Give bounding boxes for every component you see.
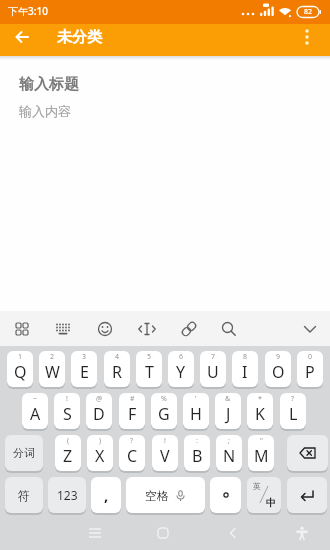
staticText: 5 bbox=[147, 352, 152, 362]
button[interactable] bbox=[215, 315, 243, 343]
staticText: T bbox=[145, 361, 154, 383]
staticText: G bbox=[158, 403, 170, 425]
staticText: 82 bbox=[304, 7, 313, 17]
staticText: S bbox=[63, 403, 72, 425]
staticText: 1 bbox=[18, 352, 23, 362]
button[interactable]: 6 bbox=[168, 351, 194, 387]
staticText: P bbox=[305, 361, 315, 383]
button[interactable]: 分词 bbox=[5, 435, 43, 471]
staticText: J bbox=[226, 403, 231, 425]
button[interactable]: 9 bbox=[265, 351, 291, 387]
button[interactable]: 3 bbox=[71, 351, 97, 387]
staticText: ? bbox=[291, 394, 295, 404]
button[interactable] bbox=[148, 518, 177, 547]
button[interactable] bbox=[91, 315, 119, 343]
button[interactable]: ? bbox=[119, 435, 145, 471]
staticText: 6 bbox=[179, 352, 184, 362]
button[interactable] bbox=[175, 315, 203, 343]
button[interactable] bbox=[133, 315, 161, 343]
button[interactable]: 空格 bbox=[126, 477, 205, 513]
button[interactable]: @ bbox=[86, 393, 112, 429]
button[interactable]: 符 bbox=[5, 477, 43, 513]
staticText: ! bbox=[66, 394, 68, 404]
button[interactable]: & bbox=[215, 393, 241, 429]
button[interactable]: : bbox=[184, 435, 210, 471]
staticText: ? bbox=[130, 436, 134, 446]
staticText: " bbox=[260, 436, 263, 446]
button[interactable]: ( bbox=[55, 435, 81, 471]
staticText: 8 bbox=[243, 352, 248, 362]
staticText: 123 bbox=[57, 487, 78, 503]
button[interactable] bbox=[210, 477, 241, 513]
staticText: F bbox=[128, 403, 137, 425]
staticText: : bbox=[196, 436, 198, 446]
staticText: 符 bbox=[18, 488, 30, 503]
staticText: X bbox=[95, 445, 105, 467]
button[interactable]: ! bbox=[152, 435, 178, 471]
staticText: # bbox=[130, 394, 135, 404]
staticText: L bbox=[289, 403, 298, 425]
staticText: Q bbox=[14, 361, 27, 383]
button[interactable]: 123 bbox=[48, 477, 86, 513]
staticText: H bbox=[190, 403, 202, 425]
staticText: C bbox=[127, 445, 138, 467]
button[interactable] bbox=[80, 518, 109, 547]
staticText: B bbox=[192, 445, 203, 467]
staticText: 输入内容 bbox=[19, 103, 71, 119]
button[interactable] bbox=[10, 25, 34, 49]
staticText: V bbox=[160, 445, 170, 467]
button[interactable] bbox=[218, 518, 247, 547]
button[interactable]: ' bbox=[183, 393, 209, 429]
staticText: 9 bbox=[276, 352, 281, 362]
button[interactable] bbox=[49, 315, 77, 343]
staticText: R bbox=[112, 361, 122, 383]
button[interactable]: ; bbox=[216, 435, 242, 471]
button[interactable]: ) bbox=[87, 435, 113, 471]
staticText: Z bbox=[63, 445, 73, 467]
staticText: O bbox=[272, 361, 285, 383]
button[interactable] bbox=[296, 315, 324, 343]
button[interactable]: 4 bbox=[104, 351, 130, 387]
button[interactable]: * bbox=[247, 393, 273, 429]
button[interactable]: 1 bbox=[7, 351, 33, 387]
button[interactable] bbox=[287, 518, 316, 547]
button[interactable]: ~ bbox=[22, 393, 48, 429]
button[interactable] bbox=[287, 477, 327, 513]
button[interactable]: " bbox=[248, 435, 274, 471]
staticText: % bbox=[161, 394, 167, 404]
staticText: ( bbox=[67, 436, 70, 446]
button[interactable]: # bbox=[119, 393, 145, 429]
staticText: , bbox=[104, 485, 109, 505]
staticText: 0 bbox=[308, 352, 313, 362]
staticText: & bbox=[225, 394, 231, 404]
staticText: 分词 bbox=[13, 446, 35, 460]
staticText: D bbox=[93, 403, 105, 425]
staticText: 2 bbox=[50, 352, 55, 362]
button[interactable]: % bbox=[151, 393, 177, 429]
staticText: K bbox=[255, 403, 265, 425]
staticText: 3 bbox=[82, 352, 87, 362]
button[interactable]: , bbox=[91, 477, 121, 513]
button[interactable]: 0 bbox=[297, 351, 323, 387]
button[interactable]: ! bbox=[54, 393, 80, 429]
button[interactable] bbox=[296, 26, 318, 48]
button[interactable]: 7 bbox=[200, 351, 226, 387]
button[interactable]: ? bbox=[280, 393, 306, 429]
button[interactable]: 2 bbox=[39, 351, 65, 387]
staticText: A bbox=[30, 403, 41, 425]
staticText: ! bbox=[164, 436, 166, 446]
staticText: 未分类 bbox=[57, 28, 102, 47]
button[interactable]: 5 bbox=[136, 351, 162, 387]
button[interactable]: 英 bbox=[247, 477, 281, 513]
button[interactable] bbox=[287, 435, 328, 471]
button[interactable]: 8 bbox=[232, 351, 258, 387]
staticText: 下午3:10 bbox=[8, 4, 48, 18]
staticText: I bbox=[242, 361, 248, 383]
staticText: ) bbox=[99, 436, 102, 446]
button[interactable] bbox=[8, 315, 36, 343]
staticText: 7 bbox=[211, 352, 216, 362]
staticText: 4 bbox=[115, 352, 120, 362]
staticText: 英 bbox=[253, 481, 261, 491]
staticText: U bbox=[207, 361, 219, 383]
staticText: ; bbox=[228, 436, 230, 446]
